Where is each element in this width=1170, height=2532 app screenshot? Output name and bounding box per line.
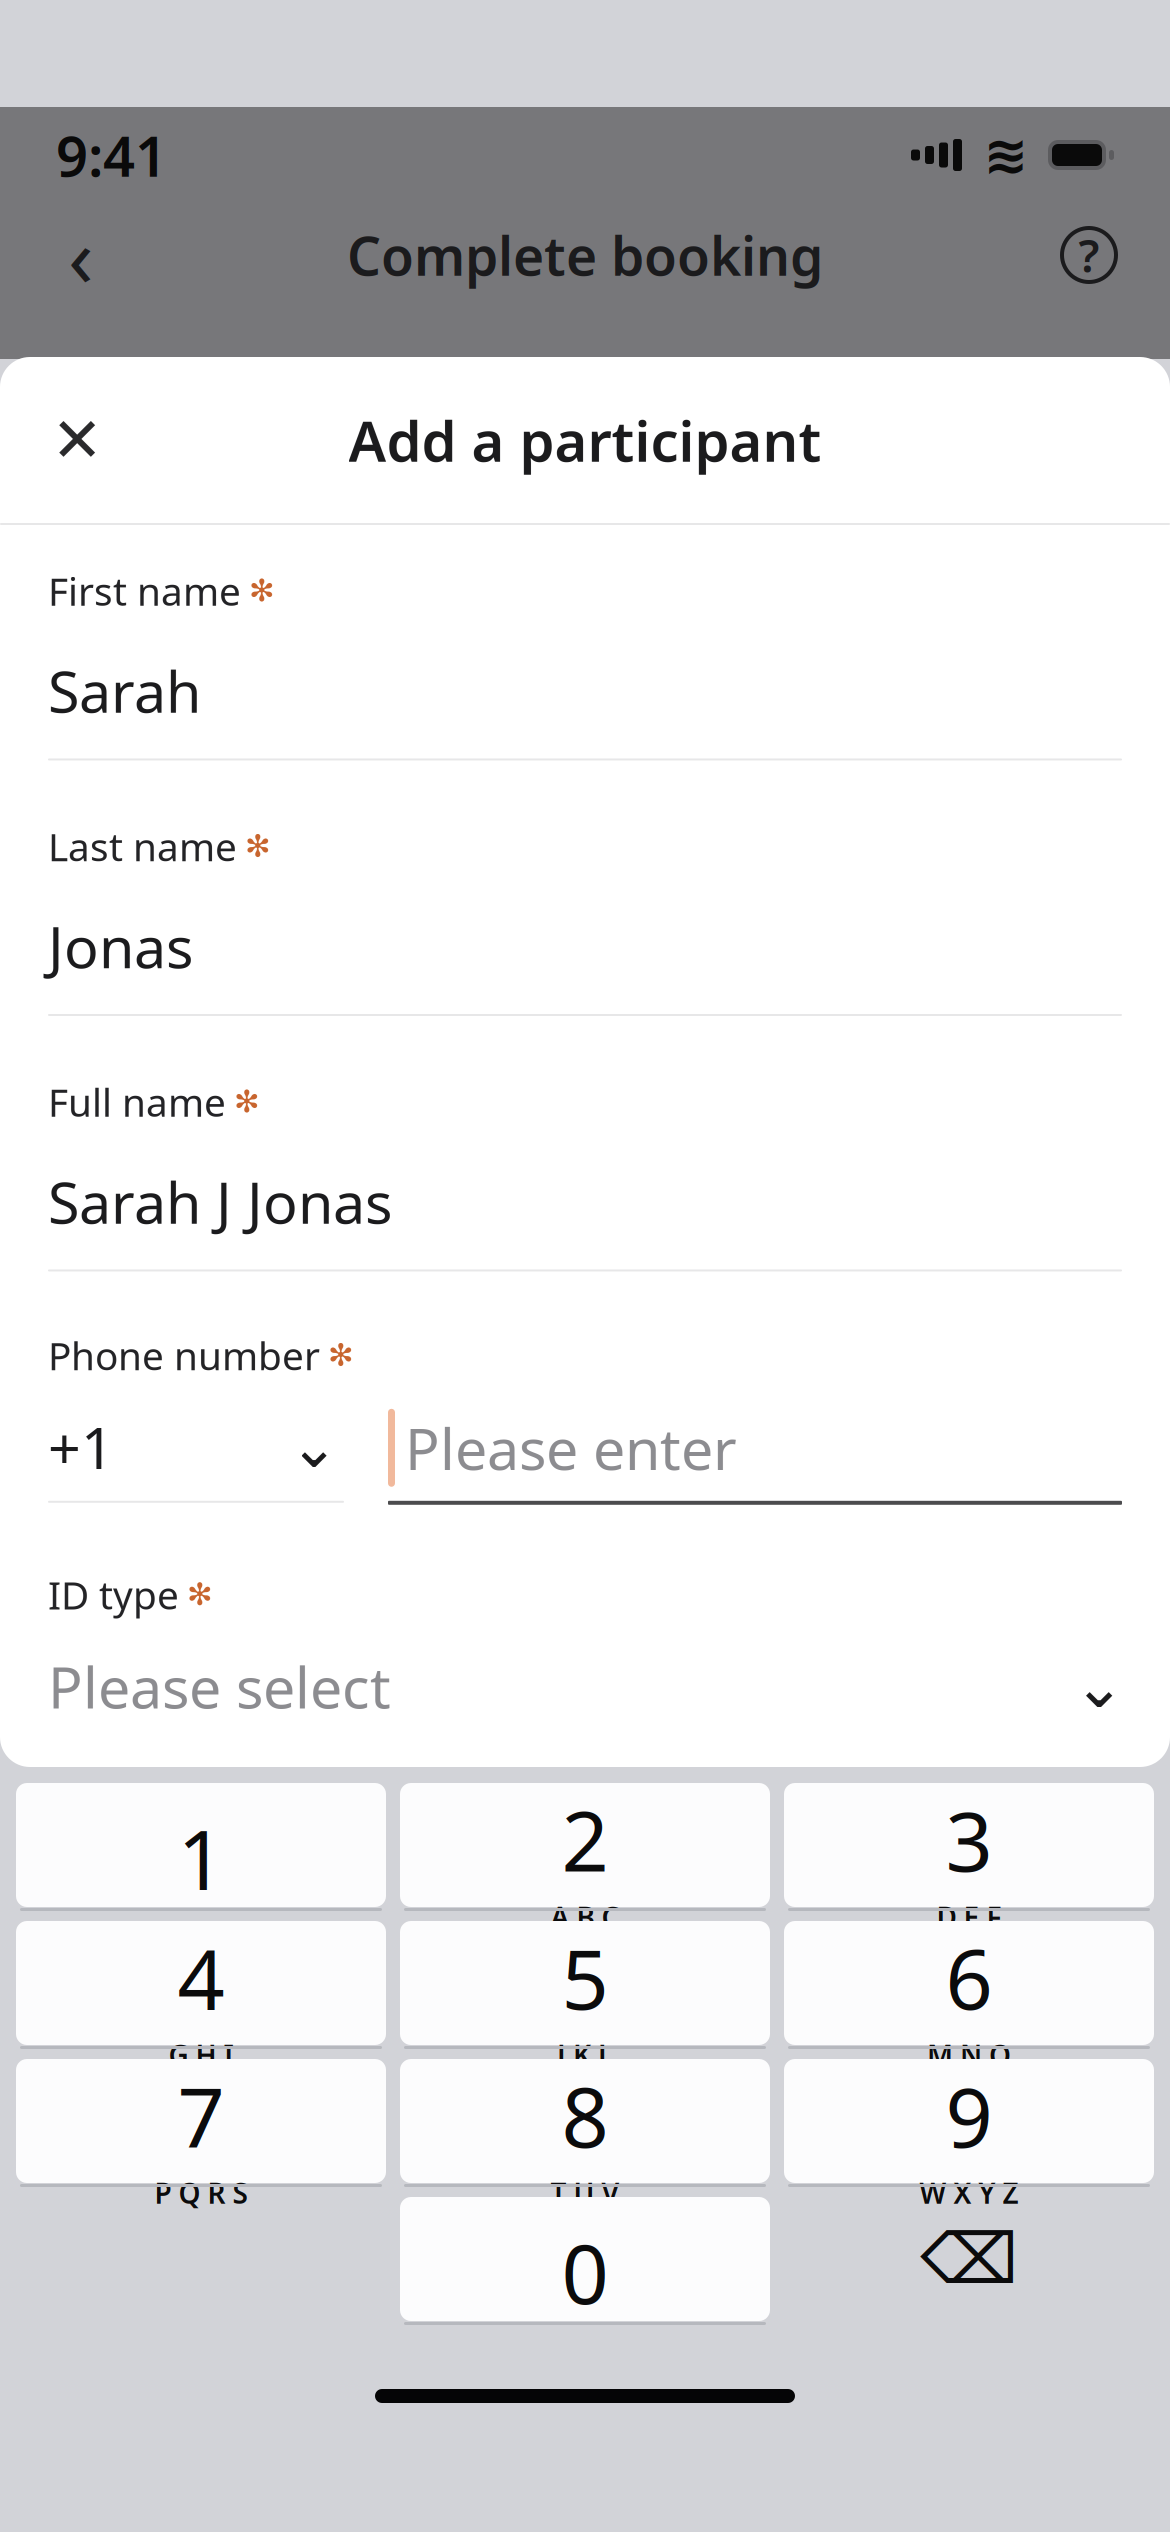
staticText: ≋ — [983, 125, 1028, 185]
button[interactable]: Delete — [784, 2197, 1154, 2321]
staticText: 1 — [177, 1803, 224, 1913]
staticText: G H I — [168, 2036, 233, 2073]
staticText: 6 — [945, 1922, 992, 2032]
staticText: ✻ — [234, 1084, 260, 1119]
button[interactable]: 1 — [16, 1783, 386, 1907]
staticText: Complete booking — [347, 220, 823, 290]
staticText: T U V — [550, 2174, 619, 2211]
staticText: ⌄ — [1073, 1651, 1124, 1721]
staticText: J K L — [557, 2036, 613, 2073]
staticText: M N O — [927, 2036, 1011, 2073]
staticText: 5 — [561, 1922, 608, 2032]
button[interactable]: 9 — [784, 2059, 1154, 2183]
button[interactable]: 8 — [400, 2059, 770, 2183]
staticText: 2 — [561, 1784, 608, 1894]
button[interactable]: 0 — [400, 2197, 770, 2321]
staticText: Full name — [48, 1076, 226, 1127]
staticText: 9 — [945, 2060, 992, 2170]
staticText: A B C — [550, 1898, 619, 1935]
staticText: 3 — [945, 1784, 992, 1894]
staticText: ✕ — [51, 405, 102, 475]
button[interactable]: 3 — [784, 1783, 1154, 1907]
staticText: Add a participant — [348, 403, 821, 477]
staticText: ‹ — [68, 200, 94, 310]
staticText: First name — [48, 565, 241, 616]
staticText: ⌄ — [289, 1413, 338, 1480]
button[interactable]: Country calling code — [48, 1411, 344, 1503]
staticText: 9:41 — [56, 118, 167, 192]
button[interactable]: Close — [34, 397, 120, 483]
button[interactable]: Phone number — [388, 1409, 1122, 1505]
staticText: Last name — [48, 820, 237, 872]
button[interactable]: Back — [42, 216, 120, 294]
button[interactable]: 7 — [16, 2059, 386, 2183]
staticText: Jonas — [48, 908, 193, 984]
staticText: ⌫ — [920, 2220, 1018, 2298]
button[interactable]: Help — [1050, 216, 1128, 294]
staticText: 4 — [177, 1922, 224, 2032]
staticText: W X Y Z — [919, 2174, 1018, 2211]
staticText: Please enter — [405, 1410, 737, 1486]
staticText: Sarah — [48, 652, 201, 728]
staticText: P Q R S — [154, 2174, 247, 2211]
staticText: ? — [1078, 225, 1099, 285]
staticText: D E F — [936, 1898, 1001, 1935]
staticText: 0 — [561, 2217, 608, 2327]
staticText: 8 — [561, 2060, 608, 2170]
staticText: ✻ — [187, 1577, 213, 1612]
button[interactable]: ID type — [48, 1654, 1122, 1718]
staticText: ID type — [48, 1569, 179, 1620]
staticText: ✻ — [245, 829, 271, 864]
button[interactable]: 6 — [784, 1921, 1154, 2045]
staticText: ✻ — [249, 573, 275, 608]
staticText: ✻ — [328, 1338, 354, 1372]
staticText: Sarah J Jonas — [48, 1163, 392, 1239]
staticText: Phone number — [48, 1329, 320, 1381]
button[interactable]: 2 — [400, 1783, 770, 1907]
button[interactable]: 4 — [16, 1921, 386, 2045]
button[interactable]: 5 — [400, 1921, 770, 2045]
staticText: Please select — [48, 1648, 391, 1724]
staticText: +1 — [48, 1409, 114, 1485]
staticText: 7 — [177, 2060, 224, 2170]
